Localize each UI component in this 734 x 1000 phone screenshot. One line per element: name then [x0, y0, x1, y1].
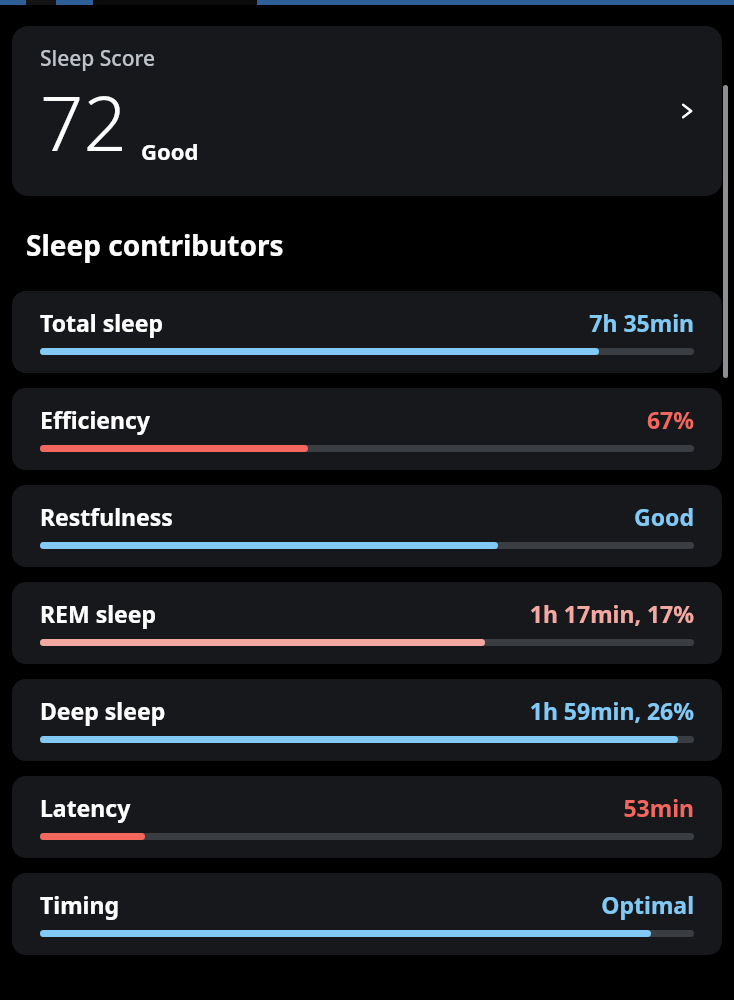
staticText: Optimal [601, 889, 694, 920]
staticText: Sleep contributors [26, 226, 284, 264]
staticText: Latency [40, 792, 623, 823]
staticText: 72 [40, 70, 127, 174]
button[interactable]: REM sleep [12, 582, 722, 664]
other: Open sleep score details [674, 98, 700, 124]
staticText: Restfulness [40, 501, 634, 532]
staticText: REM sleep [40, 598, 529, 629]
staticText: 1h 17min, 17% [529, 598, 694, 629]
button[interactable]: Efficiency [12, 388, 722, 470]
staticText: Sleep Score [40, 44, 156, 73]
staticText: 67% [646, 404, 694, 435]
staticText: Total sleep [40, 307, 589, 338]
button[interactable]: Sleep Score [12, 26, 722, 196]
staticText: Efficiency [40, 404, 646, 435]
button[interactable]: Deep sleep [12, 679, 722, 761]
staticText: 7h 35min [589, 307, 694, 338]
staticText: Good [634, 501, 694, 532]
button[interactable]: Timing [12, 873, 722, 955]
staticText: Timing [40, 889, 601, 920]
staticText: 53min [623, 792, 694, 823]
staticText: 1h 59min, 26% [529, 695, 694, 726]
staticText: Good [141, 136, 199, 166]
staticText: Deep sleep [40, 695, 529, 726]
button[interactable]: Restfulness [12, 485, 722, 567]
button[interactable]: Latency [12, 776, 722, 858]
button[interactable]: Total sleep [12, 291, 722, 373]
